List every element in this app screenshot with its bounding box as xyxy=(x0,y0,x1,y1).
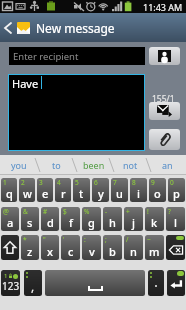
button[interactable]: Enter recipient xyxy=(9,47,145,65)
button[interactable]: ; xyxy=(103,235,122,260)
staticText: q xyxy=(6,186,13,201)
staticText: : xyxy=(84,235,86,244)
staticText: % xyxy=(84,207,90,216)
staticText: Enter recipient xyxy=(13,50,79,63)
staticText: b xyxy=(109,244,116,259)
staticText: 5 xyxy=(75,178,79,187)
staticText: 11:43 AM xyxy=(143,1,183,13)
staticText: to xyxy=(52,159,61,171)
button[interactable]: $ xyxy=(61,207,80,231)
button[interactable]: Contacts xyxy=(149,47,180,65)
button[interactable]: Back xyxy=(0,13,15,42)
button[interactable]: 2 xyxy=(19,178,35,202)
staticText: an xyxy=(162,159,173,171)
staticText: s xyxy=(27,215,33,230)
staticText: you xyxy=(11,159,27,171)
staticText: 8 xyxy=(132,178,136,187)
staticText: 2 xyxy=(21,178,25,187)
staticText: 0 xyxy=(170,178,174,187)
staticText: ~ xyxy=(147,235,151,244)
button[interactable]: # xyxy=(41,207,59,231)
staticText: 9 xyxy=(151,178,155,187)
staticText: * xyxy=(23,235,27,244)
button[interactable]: Shift xyxy=(1,235,19,260)
button[interactable]: 7 xyxy=(111,178,128,202)
staticText: a xyxy=(7,215,14,230)
button[interactable]: not xyxy=(112,155,149,175)
button[interactable]: been xyxy=(75,155,112,175)
staticText: j xyxy=(132,215,135,230)
staticText: 7 xyxy=(113,178,117,187)
staticText: e xyxy=(42,186,49,201)
staticText: m xyxy=(149,244,160,259)
staticText: d xyxy=(47,215,54,230)
button[interactable]: 5 xyxy=(73,178,90,202)
button[interactable]: ~ xyxy=(145,235,164,260)
staticText: 3 xyxy=(39,178,43,187)
staticText: 1 xyxy=(4,272,8,280)
staticText: t xyxy=(79,186,84,201)
button[interactable]: ' xyxy=(61,235,80,260)
staticText: , xyxy=(31,278,35,294)
button[interactable]: 3 xyxy=(37,178,53,202)
staticText: y xyxy=(98,186,104,201)
staticText: Have xyxy=(12,76,39,91)
button[interactable]: % xyxy=(82,207,101,231)
staticText: been xyxy=(83,159,105,171)
button[interactable]: Backspace xyxy=(166,235,185,260)
staticText: New message xyxy=(36,20,115,36)
staticText: u xyxy=(116,186,123,201)
button[interactable]: Attach xyxy=(149,129,180,150)
button[interactable]: + xyxy=(124,207,143,231)
button[interactable]: * xyxy=(21,235,39,260)
button[interactable]: Period xyxy=(148,270,164,296)
staticText: - xyxy=(105,207,108,216)
staticText: v xyxy=(89,244,95,259)
staticText: l xyxy=(174,215,177,230)
button[interactable]: Have xyxy=(9,75,144,150)
button[interactable]: 9 xyxy=(149,178,166,202)
button[interactable]: 0 xyxy=(168,178,185,202)
button[interactable]: to xyxy=(38,155,75,175)
button[interactable]: Comma xyxy=(24,270,42,296)
button[interactable]: & xyxy=(21,207,39,231)
staticText: ; xyxy=(105,235,107,244)
staticText: i xyxy=(137,186,140,201)
staticText: ? xyxy=(168,207,171,216)
button[interactable]: Enter xyxy=(167,270,185,296)
button[interactable]: 1 xyxy=(1,178,17,202)
staticText: $ xyxy=(63,207,67,216)
staticText: 123 xyxy=(2,279,20,293)
staticText: 6 xyxy=(94,178,98,187)
staticText: not xyxy=(123,159,138,171)
staticText: + xyxy=(126,207,130,216)
button[interactable]: ! xyxy=(145,207,164,231)
staticText: # xyxy=(43,207,48,216)
button[interactable]: - xyxy=(103,207,122,231)
staticText: k xyxy=(151,215,158,230)
staticText: x xyxy=(47,244,53,259)
button[interactable]: you xyxy=(0,155,38,175)
button[interactable]: Space xyxy=(45,270,145,296)
staticText: @ xyxy=(3,207,9,216)
staticText: 4 xyxy=(57,178,61,187)
button[interactable]: an xyxy=(149,155,186,175)
button[interactable]: ? xyxy=(166,207,185,231)
button[interactable]: : xyxy=(82,235,101,260)
staticText: o xyxy=(154,186,161,201)
staticText: w xyxy=(23,186,32,201)
button[interactable]: Numbers xyxy=(1,270,20,296)
staticText: ! xyxy=(147,207,149,216)
staticText: r xyxy=(61,186,66,201)
button[interactable]: 6 xyxy=(92,178,109,202)
button[interactable]: @ xyxy=(1,207,19,231)
button[interactable]: 4 xyxy=(55,178,71,202)
button[interactable]: 8 xyxy=(130,178,147,202)
staticText: z xyxy=(27,244,33,259)
staticText: ' xyxy=(63,235,65,244)
staticText: h xyxy=(109,215,116,230)
button[interactable]: " xyxy=(41,235,59,260)
button[interactable]: / xyxy=(124,235,143,260)
button[interactable]: Send xyxy=(149,102,180,120)
staticText: g xyxy=(88,215,95,230)
